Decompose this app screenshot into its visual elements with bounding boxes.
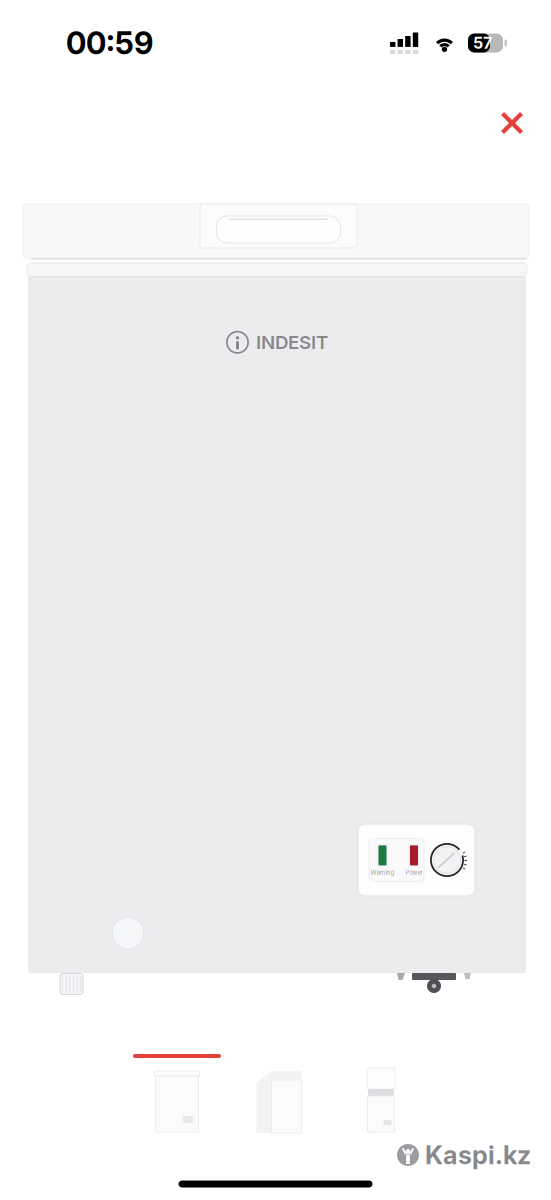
staticText: Power xyxy=(405,869,422,876)
button[interactable]: Photo 2 xyxy=(228,1054,330,1142)
button[interactable]: Photo 3 xyxy=(330,1054,432,1142)
button[interactable]: Close xyxy=(484,95,540,151)
staticText: Warning xyxy=(370,869,394,876)
staticText: 00:59 xyxy=(66,24,153,61)
button[interactable]: Photo 1 xyxy=(126,1054,228,1142)
staticText: INDESIT xyxy=(256,331,328,354)
staticText: Kaspi.kz xyxy=(425,1140,531,1170)
staticText: 57 xyxy=(473,33,492,53)
